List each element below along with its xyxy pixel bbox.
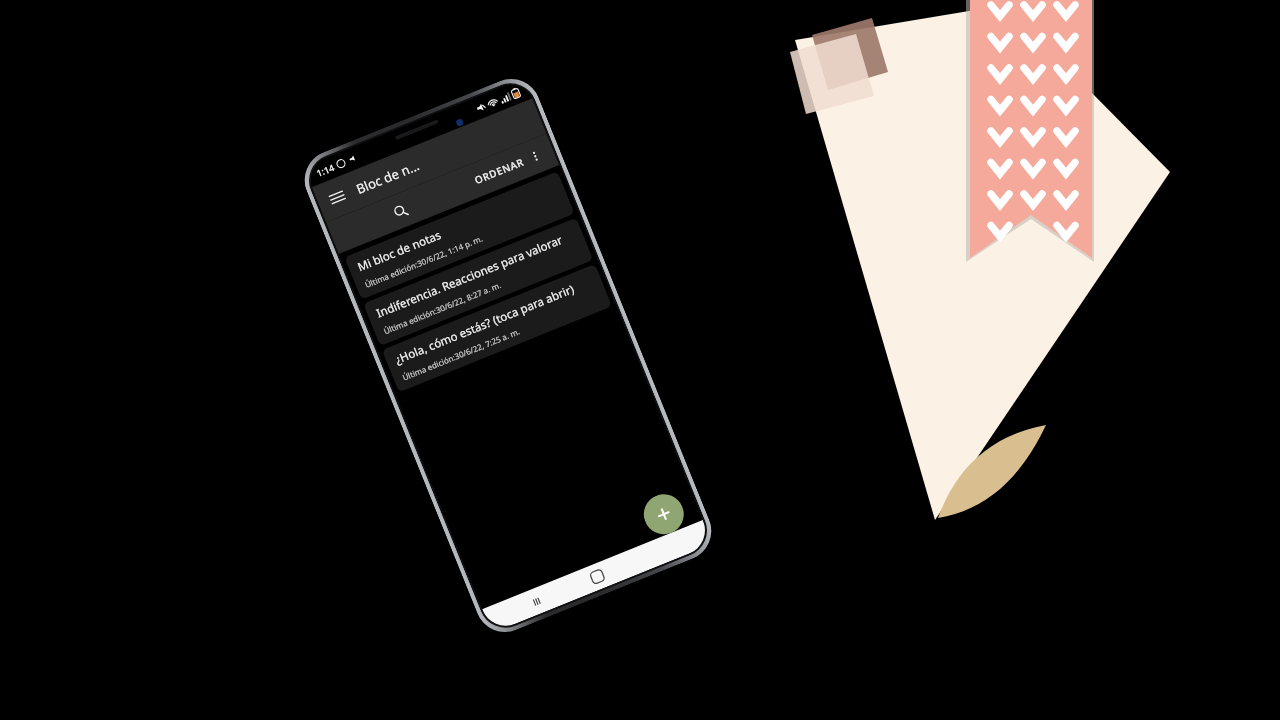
button[interactable]: Mi bloc de notas	[344, 171, 575, 300]
staticText: ORDENAR	[472, 155, 526, 187]
button[interactable]: Menú	[323, 183, 352, 212]
button[interactable]: Más opciones	[522, 143, 548, 169]
staticText: Bloc de n...	[353, 156, 422, 198]
button[interactable]: Recientes	[519, 584, 553, 618]
staticText: ¿Hola, cómo estás? (toca para abrir)	[393, 281, 577, 368]
staticText: Última edición:30/6/22, 7:25 a. m.	[400, 293, 601, 383]
button[interactable]: Indiferencia. Reacciones para valorar	[363, 217, 593, 346]
button[interactable]: ¿Hola, cómo estás? (toca para abrir)	[382, 264, 612, 392]
staticText: Mi bloc de notas	[355, 227, 444, 275]
button[interactable]: Inicio	[580, 560, 614, 593]
staticText: Última edición:30/6/22, 8:27 a. m.	[382, 247, 582, 336]
button[interactable]: Nueva nota	[638, 488, 690, 540]
staticText: 1:14	[315, 161, 336, 179]
button[interactable]: Buscar	[384, 195, 416, 226]
staticText: Indiferencia. Reacciones para valorar	[374, 232, 565, 321]
button[interactable]: Atrás	[642, 535, 675, 569]
button[interactable]: ORDENAR	[468, 150, 530, 192]
staticText: Última edición:30/6/22, 1:14 p. m.	[363, 200, 564, 290]
